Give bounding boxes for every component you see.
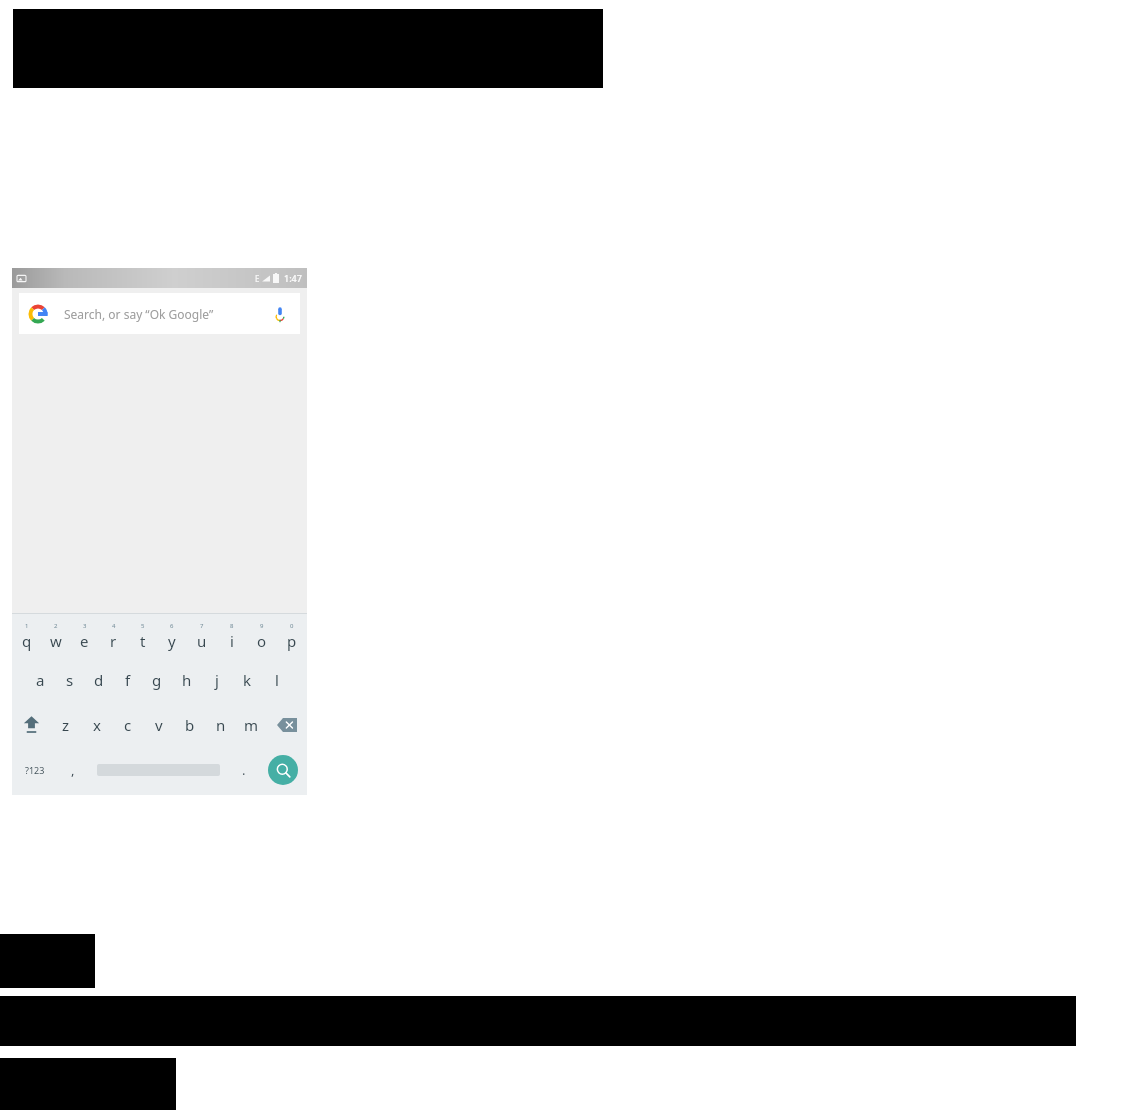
button[interactable]: Search, or say “Ok Google” bbox=[19, 293, 300, 334]
staticText: 3 bbox=[83, 622, 87, 630]
button[interactable]: x bbox=[81, 702, 112, 747]
staticText: d bbox=[94, 670, 104, 690]
staticText: j bbox=[215, 670, 219, 690]
staticText: v bbox=[155, 715, 163, 735]
button[interactable]: c bbox=[112, 702, 143, 747]
button[interactable]: 2 bbox=[41, 614, 70, 658]
button[interactable]: 8 bbox=[217, 614, 247, 658]
staticText: E bbox=[255, 273, 260, 284]
staticText: 2 bbox=[54, 622, 58, 630]
button[interactable]: , bbox=[57, 747, 88, 792]
staticText: 7 bbox=[200, 622, 204, 630]
staticText: o bbox=[257, 631, 267, 651]
staticText: 0 bbox=[290, 622, 294, 630]
button[interactable]: v bbox=[143, 702, 174, 747]
button[interactable]: z bbox=[51, 702, 81, 747]
button[interactable]: 0 bbox=[277, 614, 307, 658]
staticText: i bbox=[230, 631, 234, 651]
button[interactable]: a bbox=[26, 658, 55, 702]
button[interactable]: Voice search bbox=[270, 304, 290, 324]
button[interactable]: Backspace bbox=[267, 702, 307, 747]
staticText: g bbox=[152, 670, 162, 690]
button[interactable]: b bbox=[174, 702, 205, 747]
staticText: q bbox=[22, 631, 32, 651]
button[interactable]: n bbox=[205, 702, 236, 747]
staticText: t bbox=[140, 631, 146, 651]
staticText: s bbox=[66, 670, 74, 690]
button[interactable]: 9 bbox=[247, 614, 277, 658]
button[interactable]: 3 bbox=[70, 614, 99, 658]
staticText: h bbox=[182, 670, 192, 690]
staticText: ?123 bbox=[25, 764, 45, 776]
staticText: b bbox=[185, 715, 195, 735]
staticText: z bbox=[62, 715, 70, 735]
button[interactable]: m bbox=[236, 702, 267, 747]
staticText: c bbox=[124, 715, 132, 735]
button[interactable]: l bbox=[262, 658, 292, 702]
staticText: m bbox=[244, 715, 259, 735]
staticText: 9 bbox=[260, 622, 264, 630]
staticText: e bbox=[80, 631, 89, 651]
button[interactable]: 1 bbox=[12, 614, 41, 658]
button[interactable]: s bbox=[55, 658, 84, 702]
staticText: , bbox=[71, 761, 75, 779]
staticText: . bbox=[242, 761, 246, 779]
staticText: 6 bbox=[170, 622, 174, 630]
staticText: p bbox=[287, 631, 297, 651]
button[interactable]: j bbox=[202, 658, 232, 702]
button[interactable]: . bbox=[228, 747, 259, 792]
staticText: a bbox=[36, 670, 45, 690]
staticText: w bbox=[50, 631, 62, 651]
staticText: Search, or say “Ok Google” bbox=[64, 306, 214, 322]
button[interactable]: 4 bbox=[99, 614, 128, 658]
staticText: 1 bbox=[25, 622, 29, 630]
staticText: y bbox=[168, 631, 176, 651]
staticText: f bbox=[125, 670, 131, 690]
button[interactable]: ?123 bbox=[12, 747, 57, 792]
button[interactable]: k bbox=[232, 658, 262, 702]
button[interactable]: Shift bbox=[12, 702, 51, 747]
button[interactable]: Space bbox=[88, 747, 228, 792]
staticText: 5 bbox=[141, 622, 145, 630]
staticText: k bbox=[243, 670, 252, 690]
button[interactable]: g bbox=[142, 658, 172, 702]
staticText: l bbox=[275, 670, 279, 690]
staticText: x bbox=[93, 715, 101, 735]
staticText: 8 bbox=[230, 622, 234, 630]
staticText: 4 bbox=[112, 622, 116, 630]
button[interactable]: Search bbox=[268, 755, 298, 785]
button[interactable]: h bbox=[172, 658, 202, 702]
button[interactable]: 7 bbox=[187, 614, 217, 658]
button[interactable]: d bbox=[84, 658, 113, 702]
staticText: 1:47 bbox=[284, 272, 302, 284]
staticText: n bbox=[216, 715, 226, 735]
staticText: u bbox=[197, 631, 207, 651]
button[interactable]: f bbox=[113, 658, 142, 702]
button[interactable]: 6 bbox=[157, 614, 187, 658]
button[interactable]: 5 bbox=[128, 614, 157, 658]
staticText: r bbox=[110, 631, 117, 651]
